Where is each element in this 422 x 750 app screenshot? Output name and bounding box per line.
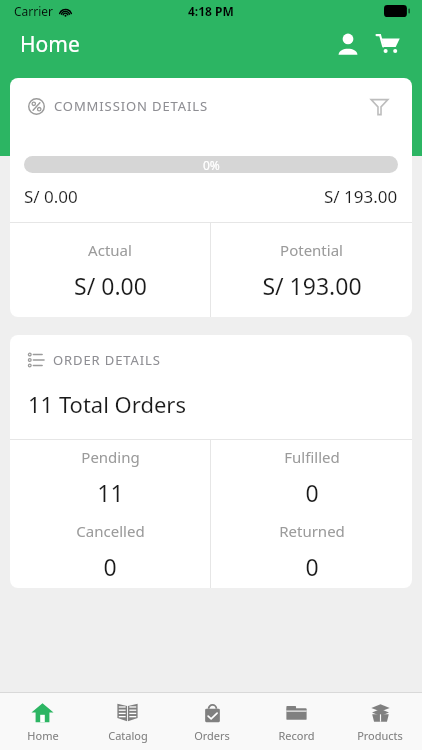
button[interactable]: Filter	[364, 91, 394, 121]
staticText: 0	[305, 551, 319, 582]
staticText: S/ 193.00	[324, 185, 398, 208]
staticText: 11	[97, 477, 124, 508]
staticText: Actual	[88, 240, 132, 260]
staticText: Record	[278, 728, 315, 743]
button[interactable]: Account	[328, 24, 368, 64]
button[interactable]: Returned	[211, 514, 412, 588]
staticText: 0	[103, 551, 117, 582]
staticText: 0%	[203, 157, 220, 173]
staticText: Returned	[279, 521, 345, 541]
staticText: Cancelled	[76, 521, 145, 541]
button[interactable]: Cancelled	[10, 514, 210, 588]
staticText: 0	[305, 477, 319, 508]
button[interactable]: Actual	[10, 223, 210, 317]
staticText: Home	[20, 30, 80, 59]
staticText: COMMISSION DETAILS	[54, 97, 209, 115]
button[interactable]: Potential	[211, 223, 412, 317]
button[interactable]: Orders	[170, 693, 254, 750]
button[interactable]: Catalog	[85, 693, 170, 750]
button[interactable]: Fulfilled	[211, 440, 412, 514]
button[interactable]: Home	[0, 693, 85, 750]
staticText: S/ 0.00	[74, 270, 147, 301]
button[interactable]: Products	[338, 693, 422, 750]
staticText: Home	[27, 728, 59, 743]
staticText: Pending	[81, 447, 140, 467]
staticText: Catalog	[108, 728, 148, 743]
staticText: S/ 0.00	[24, 185, 78, 208]
staticText: Potential	[280, 240, 343, 260]
staticText: Carrier	[14, 3, 54, 19]
staticText: Products	[357, 728, 403, 743]
staticText: Orders	[194, 728, 230, 743]
button[interactable]: Pending	[10, 440, 210, 514]
staticText: S/ 193.00	[262, 270, 362, 301]
staticText: 4:18 PM	[188, 3, 234, 19]
staticText: ORDER DETAILS	[53, 351, 161, 369]
staticText: Fulfilled	[284, 447, 340, 467]
button[interactable]: Cart	[368, 24, 408, 64]
button[interactable]: Record	[254, 693, 338, 750]
staticText: 11 Total Orders	[28, 389, 186, 419]
